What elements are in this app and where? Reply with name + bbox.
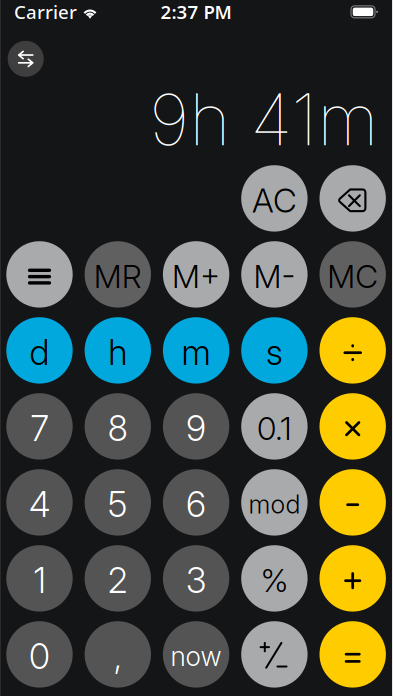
staticText: 6 bbox=[186, 483, 206, 525]
button[interactable]: % bbox=[241, 545, 308, 612]
button[interactable]: 3 bbox=[163, 545, 229, 612]
staticText: 0.1 bbox=[257, 409, 292, 448]
staticText: M- bbox=[253, 257, 295, 296]
staticText: 9h 41m bbox=[149, 77, 378, 162]
button[interactable]: h bbox=[85, 317, 151, 384]
button[interactable]: MC bbox=[319, 241, 386, 308]
button[interactable]: Divide bbox=[319, 317, 386, 384]
staticText: 5 bbox=[108, 483, 128, 525]
button[interactable]: 7 bbox=[6, 393, 73, 460]
button[interactable]: M- bbox=[241, 241, 308, 308]
button[interactable]: 5 bbox=[85, 469, 151, 536]
button[interactable]: Delete bbox=[319, 165, 386, 232]
button[interactable]: Multiply bbox=[319, 393, 386, 460]
button[interactable]: 0.1 bbox=[241, 393, 308, 460]
button[interactable]: 2 bbox=[85, 545, 151, 612]
staticText: 7 bbox=[30, 407, 48, 449]
button[interactable]: Subtract bbox=[319, 469, 386, 536]
button[interactable]: Equals bbox=[319, 621, 386, 688]
button[interactable]: Toggle sign bbox=[241, 621, 308, 688]
staticText: MR bbox=[94, 257, 142, 296]
button[interactable]: 6 bbox=[163, 469, 229, 536]
staticText: 2:37 PM bbox=[161, 0, 232, 24]
staticText: Carrier bbox=[14, 0, 77, 24]
staticText: s bbox=[266, 331, 283, 373]
button[interactable]: History bbox=[6, 241, 73, 308]
button[interactable]: now bbox=[163, 621, 229, 688]
staticText: m bbox=[182, 331, 211, 373]
staticText: 0 bbox=[29, 635, 50, 677]
staticText: 1 bbox=[33, 559, 45, 601]
button[interactable]: Add bbox=[319, 545, 386, 612]
button[interactable]: s bbox=[241, 317, 308, 384]
button[interactable]: d bbox=[6, 317, 73, 384]
button[interactable]: MR bbox=[85, 241, 151, 308]
button[interactable]: 9 bbox=[163, 393, 229, 460]
staticText: h bbox=[108, 331, 127, 373]
button[interactable]: 1 bbox=[6, 545, 73, 612]
button[interactable]: mod bbox=[241, 469, 308, 536]
button[interactable]: 4 bbox=[6, 469, 73, 536]
staticText: 9 bbox=[186, 407, 206, 449]
staticText: M+ bbox=[172, 257, 220, 296]
staticText: now bbox=[171, 640, 222, 673]
staticText: 8 bbox=[108, 407, 128, 449]
button[interactable]: m bbox=[163, 317, 229, 384]
staticText: d bbox=[29, 331, 49, 373]
staticText: % bbox=[260, 561, 288, 600]
staticText: , bbox=[114, 635, 122, 677]
staticText: 3 bbox=[186, 559, 206, 601]
staticText: AC bbox=[252, 180, 297, 220]
button[interactable]: 8 bbox=[85, 393, 151, 460]
staticText: 2 bbox=[108, 559, 128, 601]
button[interactable]: M+ bbox=[163, 241, 229, 308]
button[interactable]: Swap bbox=[8, 41, 44, 77]
button[interactable]: , bbox=[85, 621, 151, 688]
button[interactable]: 0 bbox=[6, 621, 73, 688]
button[interactable]: AC bbox=[241, 165, 308, 232]
staticText: mod bbox=[248, 489, 300, 520]
staticText: 4 bbox=[29, 483, 50, 525]
staticText: MC bbox=[327, 257, 378, 296]
